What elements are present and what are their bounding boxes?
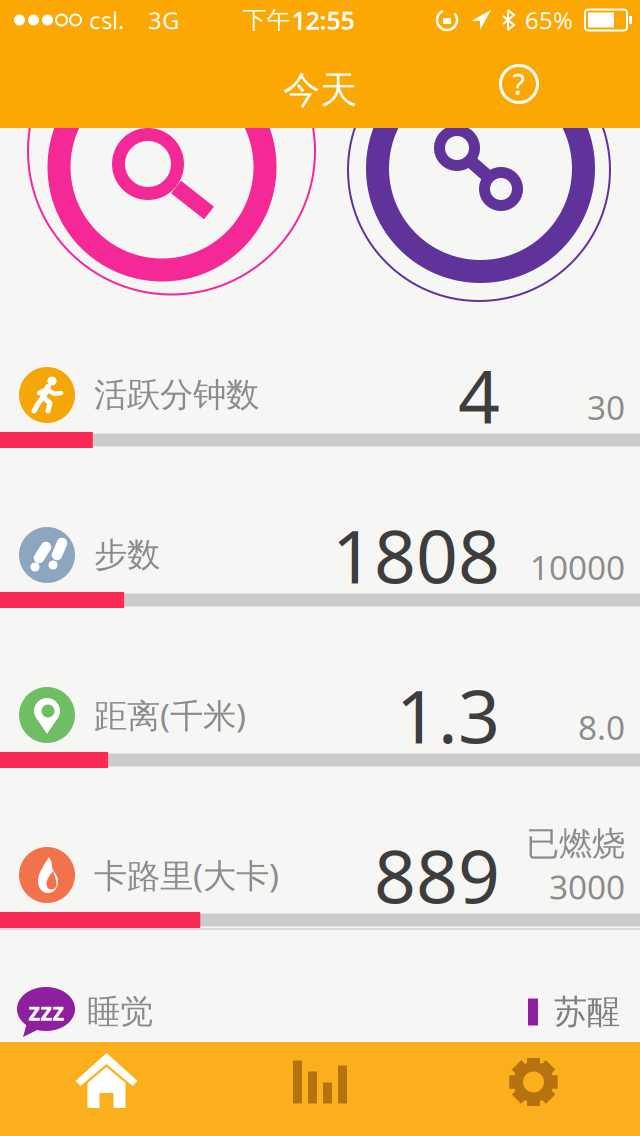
button[interactable]: Link [320,8,640,328]
button[interactable]: Help [500,65,538,103]
staticText: 30 [587,385,625,429]
button[interactable]: Home [0,1042,213,1136]
staticText: 12:55 [291,3,354,37]
staticText: 今天 [283,67,357,113]
button[interactable]: Search [2,7,322,327]
staticText: 卡路里(大卡) [94,853,279,897]
staticText: 距离(千米) [94,693,246,737]
button[interactable]: Settings [427,1042,640,1136]
staticText: 下午 [242,5,290,35]
staticText: 3G [148,4,179,36]
button[interactable]: zzz [0,930,640,1042]
staticText: 3000 [549,864,625,909]
staticText: 睡觉 [87,991,153,1032]
button[interactable]: 步数 [0,448,640,608]
staticText: 活跃分钟数 [94,374,259,415]
button[interactable]: 距离(千米) [0,608,640,768]
staticText: ? [512,65,525,103]
staticText: zzz [28,994,64,1028]
button[interactable]: 活跃分钟数 [0,288,640,448]
staticText: 8.0 [578,705,625,749]
staticText: 已燃烧 [526,823,625,864]
staticText: 10000 [530,545,625,589]
button[interactable]: Stats [213,1042,427,1136]
staticText: 65% [525,4,573,36]
button[interactable]: 卡路里(大卡) [0,768,640,928]
staticText: 步数 [94,534,160,575]
staticText: 1.3 [396,666,500,764]
staticText: 1808 [332,506,500,604]
staticText: 苏醒 [554,991,620,1032]
staticText: 889 [374,826,500,924]
staticText: 4 [458,346,500,444]
staticText: csl. [89,4,124,36]
